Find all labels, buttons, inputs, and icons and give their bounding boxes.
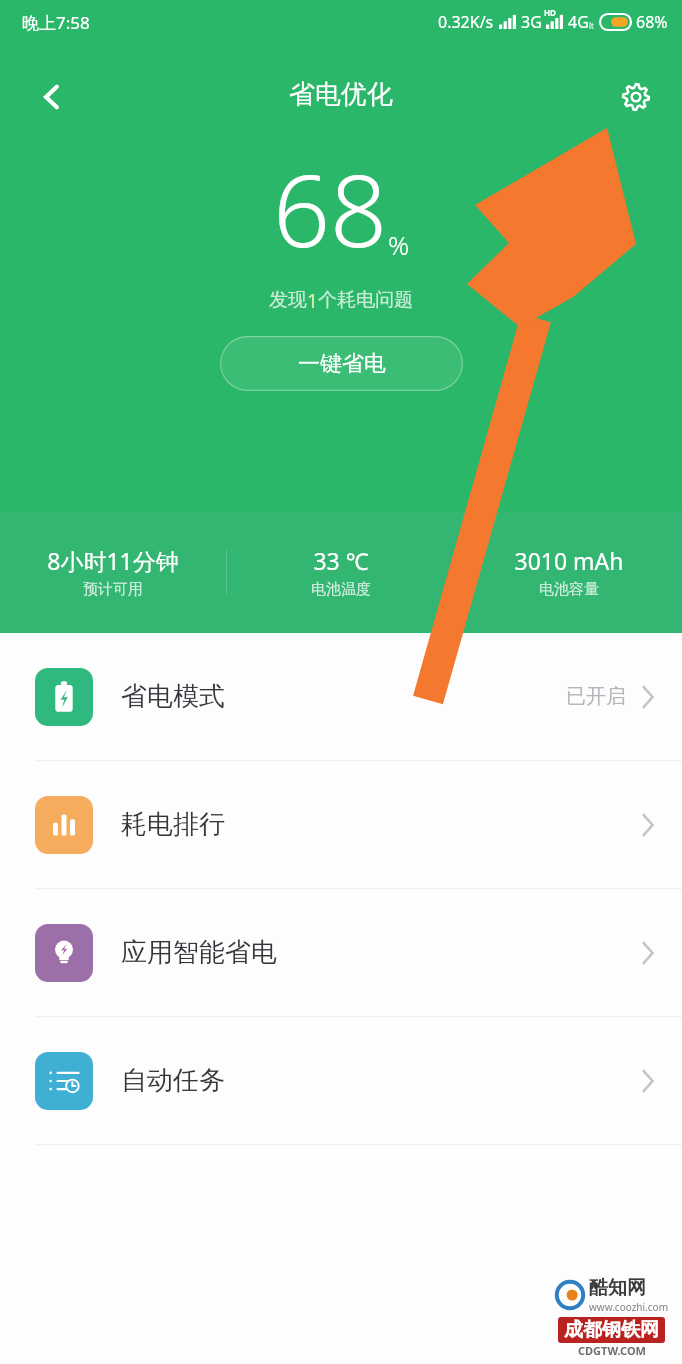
staticText: 省电优化	[289, 78, 393, 111]
staticText: 3G	[521, 11, 542, 33]
staticText: 个耗电问题	[318, 288, 413, 312]
button[interactable]: 耗电排行	[0, 761, 682, 888]
staticText: %	[388, 227, 410, 262]
staticText: CDGTW.COM	[578, 1343, 646, 1358]
staticText: 电池容量	[539, 580, 599, 599]
staticText: lt	[589, 20, 594, 31]
staticText: 电池温度	[311, 580, 371, 599]
button[interactable]: 一键省电	[220, 336, 463, 391]
staticText: 4G	[568, 11, 589, 33]
button[interactable]: Settings	[602, 63, 670, 131]
staticText: 一键省电	[298, 350, 386, 378]
staticText: 酷知网	[589, 1276, 646, 1300]
staticText: 8小时11分钟	[47, 545, 179, 576]
staticText: 已开启	[566, 684, 626, 709]
button[interactable]: 应用智能省电	[0, 889, 682, 1016]
button[interactable]: Back	[18, 63, 86, 131]
button[interactable]: 省电模式	[0, 633, 682, 760]
staticText: 预计可用	[83, 580, 143, 599]
staticText: 省电模式	[121, 680, 225, 713]
staticText: 应用智能省电	[121, 936, 277, 969]
button[interactable]: 自动任务	[0, 1017, 682, 1144]
staticText: HD	[544, 7, 556, 18]
staticText: 耗电排行	[121, 808, 225, 841]
staticText: www.coozhi.com	[589, 1300, 668, 1314]
staticText: 晚上7:58	[22, 11, 90, 34]
staticText: 1	[307, 288, 318, 314]
staticText: 成都钢铁网	[564, 1318, 659, 1342]
staticText: 自动任务	[121, 1064, 225, 1097]
staticText: 68	[273, 140, 388, 276]
staticText: 3010 mAh	[514, 545, 624, 576]
staticText: 33 ℃	[313, 545, 369, 576]
staticText: 0.32K/s	[438, 11, 494, 33]
staticText: 68%	[636, 11, 668, 33]
staticText: 发现	[269, 288, 307, 312]
